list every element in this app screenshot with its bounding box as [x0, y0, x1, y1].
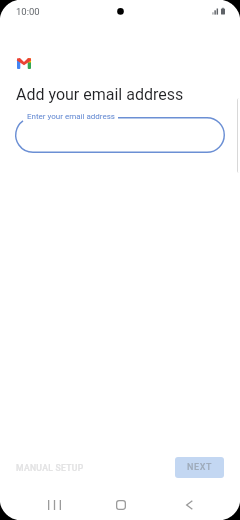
- button[interactable]: Recent apps: [38, 489, 70, 520]
- staticText: Enter your email address: [27, 112, 115, 121]
- button[interactable]: Back: [173, 489, 205, 520]
- button[interactable]: MANUAL SETUP: [8, 457, 92, 479]
- staticText: 10:00: [16, 6, 40, 17]
- button[interactable]: Home: [105, 489, 137, 520]
- staticText: Add your email address: [16, 85, 184, 104]
- staticText: MANUAL SETUP: [16, 463, 84, 473]
- button[interactable]: [15, 117, 225, 153]
- staticText: NEXT: [187, 462, 213, 473]
- button[interactable]: NEXT: [175, 457, 224, 478]
